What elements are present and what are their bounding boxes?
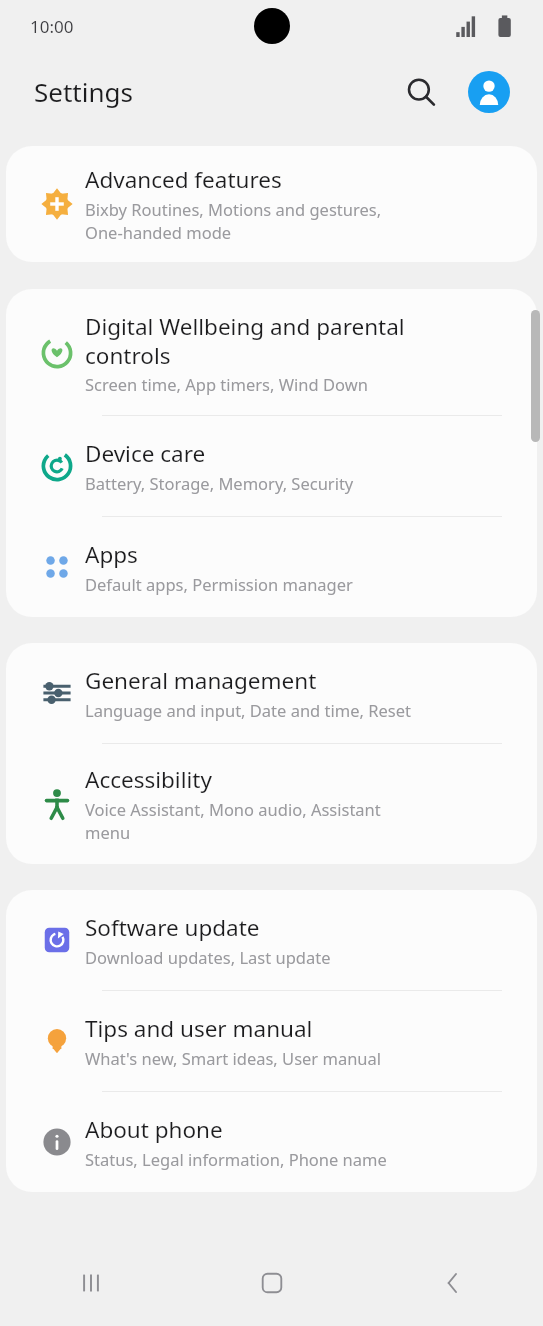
staticText: Advanced features <box>85 164 282 195</box>
staticText: Default apps, Permission manager <box>85 573 353 595</box>
staticText: Bixby Routines, Motions and gestures, On… <box>85 198 382 244</box>
button[interactable]: Device care <box>6 416 537 516</box>
button[interactable]: Home <box>181 1240 362 1326</box>
staticText: Apps <box>85 539 138 570</box>
staticText: About phone <box>85 1114 223 1145</box>
button[interactable]: General management <box>6 643 537 743</box>
staticText: Screen time, App timers, Wind Down <box>85 373 368 395</box>
staticText: Device care <box>85 438 206 469</box>
staticText: Settings <box>34 74 133 109</box>
staticText: Battery, Storage, Memory, Security <box>85 472 354 494</box>
staticText: Accessibility <box>85 764 212 795</box>
staticText: Download updates, Last update <box>85 946 331 968</box>
button[interactable]: Tips and user manual <box>6 991 537 1091</box>
staticText: What's new, Smart ideas, User manual <box>85 1047 382 1069</box>
staticText: Digital Wellbeing and parental controls <box>85 311 405 370</box>
button[interactable]: Accessibility <box>6 744 537 864</box>
button[interactable]: Recents <box>0 1240 181 1326</box>
staticText: Status, Legal information, Phone name <box>85 1148 387 1170</box>
button[interactable]: Apps <box>6 517 537 617</box>
button[interactable]: Software update <box>6 890 537 990</box>
button[interactable]: About phone <box>6 1092 537 1192</box>
button[interactable]: Advanced features <box>6 146 537 262</box>
button[interactable]: Account <box>467 70 511 114</box>
staticText: Voice Assistant, Mono audio, Assistant m… <box>85 798 381 844</box>
button[interactable]: Search <box>397 68 445 116</box>
button[interactable]: Digital Wellbeing and parental controls <box>6 289 537 415</box>
staticText: 10:00 <box>30 15 74 38</box>
staticText: Language and input, Date and time, Reset <box>85 699 411 721</box>
button[interactable]: Back <box>362 1240 543 1326</box>
staticText: Software update <box>85 912 260 943</box>
staticText: Tips and user manual <box>85 1013 313 1044</box>
staticText: General management <box>85 665 317 696</box>
